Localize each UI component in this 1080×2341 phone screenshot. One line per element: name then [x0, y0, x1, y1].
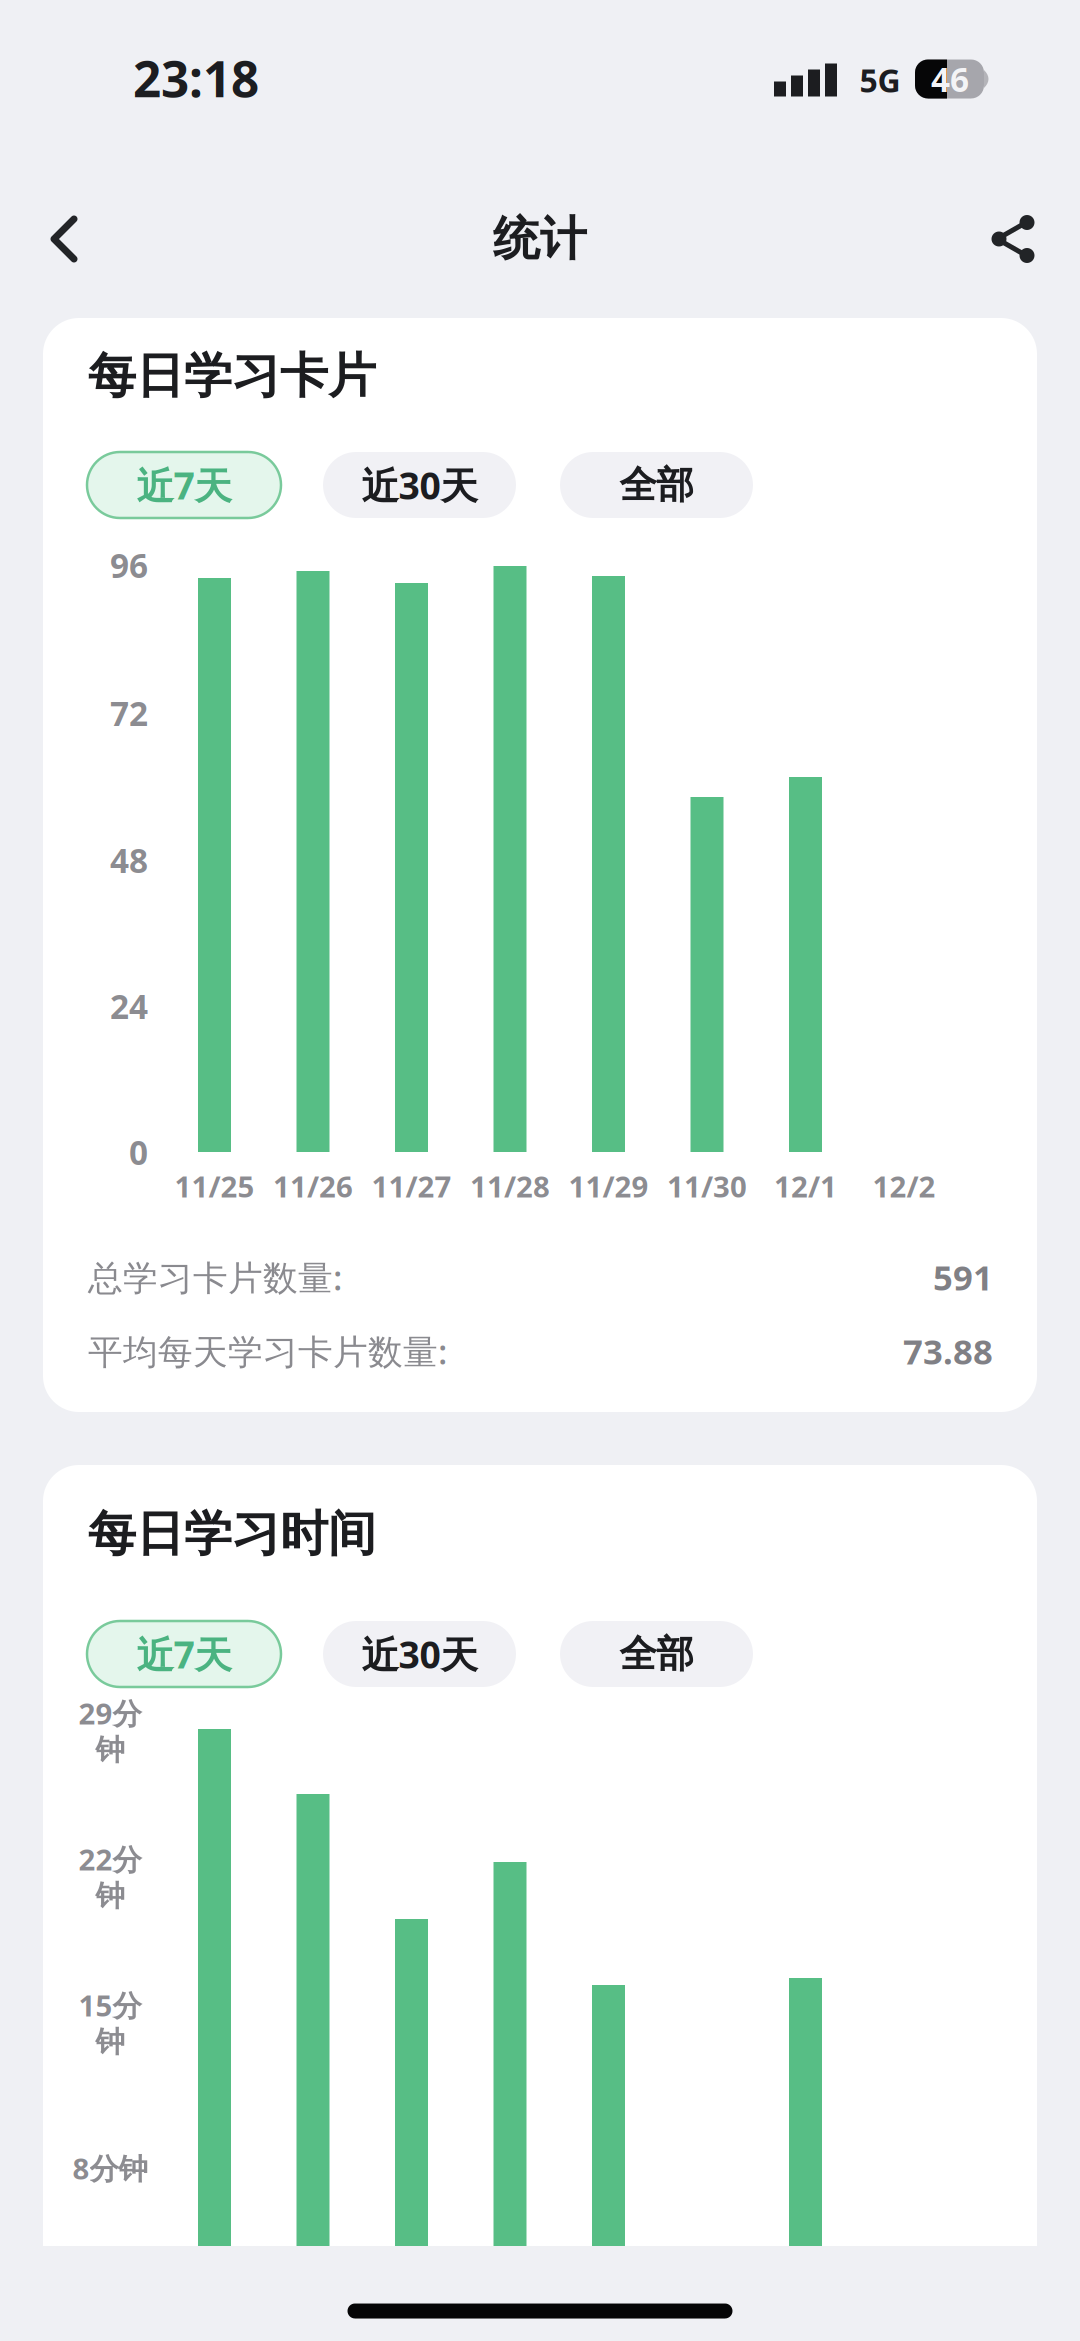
button[interactable]: 近7天 [87, 452, 281, 518]
staticText: 全部 [619, 462, 693, 508]
staticText: 12/1 [774, 1166, 837, 1205]
staticText: 钟 [95, 1878, 124, 1914]
staticText: 15分 [78, 1985, 141, 2024]
staticText: 近7天 [136, 460, 231, 510]
staticText: 近7天 [136, 1629, 231, 1679]
staticText: 钟 [95, 1732, 124, 1768]
staticText: 11/29 [568, 1166, 648, 1205]
staticText: 8分钟 [72, 2148, 147, 2187]
staticText: 平均每天学习卡片数量: [88, 1328, 447, 1374]
staticText: 11/27 [371, 1166, 451, 1205]
staticText: 22分 [78, 1839, 141, 1878]
staticText: 12/2 [872, 1166, 935, 1205]
staticText: 23:18 [133, 45, 259, 111]
staticText: 48 [110, 838, 148, 882]
staticText: 总学习卡片数量: [88, 1254, 342, 1300]
staticText: 24 [110, 984, 148, 1028]
staticText: 46 [931, 57, 969, 101]
button[interactable]: 近30天 [323, 452, 516, 518]
staticText: 11/26 [273, 1166, 353, 1205]
staticText: 11/25 [174, 1166, 254, 1205]
button[interactable] [24, 199, 104, 279]
staticText: 73.88 [903, 1328, 993, 1374]
button[interactable]: 全部 [560, 1621, 753, 1687]
staticText: 统计 [493, 210, 587, 268]
staticText: 钟 [95, 2024, 124, 2060]
staticText: 每日学习卡片 [88, 346, 376, 405]
staticText: 72 [110, 691, 148, 735]
staticText: 全部 [619, 1631, 693, 1677]
staticText: 11/30 [667, 1166, 747, 1205]
button[interactable]: 近7天 [87, 1621, 281, 1687]
button[interactable]: 近30天 [323, 1621, 516, 1687]
staticText: 29分 [78, 1693, 141, 1732]
staticText: 近30天 [361, 1629, 477, 1679]
staticText: 近30天 [361, 460, 477, 510]
staticText: 5G [859, 59, 900, 101]
button[interactable]: 全部 [560, 452, 753, 518]
staticText: 591 [933, 1254, 993, 1300]
button[interactable] [973, 199, 1053, 279]
staticText: 每日学习时间 [88, 1504, 376, 1563]
staticText: 96 [110, 543, 148, 587]
staticText: 11/28 [470, 1166, 550, 1205]
staticText: 0 [129, 1130, 148, 1174]
